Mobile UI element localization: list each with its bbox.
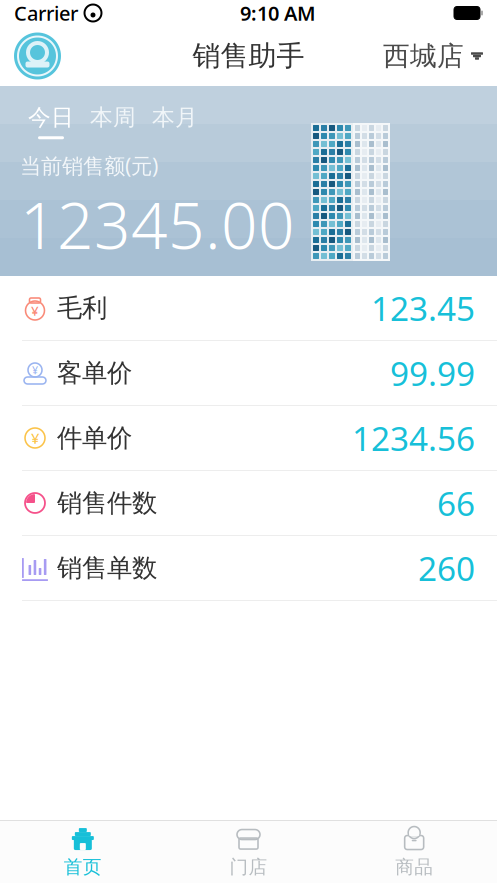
button[interactable]: 本月: [144, 99, 206, 143]
staticText: 毛利: [57, 292, 107, 323]
button[interactable]: 今日: [20, 99, 82, 143]
button[interactable]: 西城店: [383, 32, 497, 80]
button[interactable]: 销售件数: [0, 471, 497, 535]
staticText: 销售助手: [192, 39, 304, 73]
staticText: 123.45: [371, 286, 475, 330]
button[interactable]: 本周: [82, 99, 144, 143]
staticText: 当前销售额(元): [20, 151, 158, 180]
staticText: 西城店: [383, 40, 464, 72]
staticText: 本月: [152, 103, 198, 131]
staticText: 260: [418, 546, 475, 590]
button[interactable]: 首页: [0, 819, 166, 883]
staticText: ¥: [31, 302, 39, 319]
staticText: 66: [437, 481, 475, 525]
staticText: 99.99: [390, 351, 475, 395]
staticText: Carrier: [14, 0, 78, 26]
staticText: 门店: [229, 855, 267, 878]
staticText: ¥: [32, 363, 38, 377]
button[interactable]: 应用标识: [0, 28, 61, 83]
staticText: 客单价: [57, 357, 132, 388]
button[interactable]: 门店: [166, 819, 331, 883]
staticText: 件单价: [57, 422, 132, 453]
staticText: ¥: [31, 428, 39, 448]
staticText: 今日: [28, 103, 74, 131]
button[interactable]: ¥: [0, 406, 497, 470]
staticText: 销售件数: [57, 487, 157, 518]
staticText: 本周: [90, 103, 136, 131]
button[interactable]: ¥: [0, 276, 497, 340]
button[interactable]: ¥: [0, 341, 497, 405]
button[interactable]: 销售单数: [0, 536, 497, 600]
staticText: 商品: [395, 855, 433, 878]
staticText: 首页: [64, 855, 102, 878]
staticText: 9:10 AM: [240, 0, 316, 26]
button[interactable]: 商品: [331, 819, 497, 883]
staticText: 1234.56: [352, 416, 475, 460]
staticText: 销售单数: [57, 552, 157, 583]
staticText: 12345.00: [20, 182, 295, 267]
